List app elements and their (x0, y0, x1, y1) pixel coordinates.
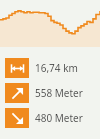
button[interactable]: Descent (5, 108, 29, 128)
button[interactable]: Distance (5, 58, 29, 78)
button[interactable]: Ascent (5, 83, 29, 103)
staticText: 558 Meter (35, 86, 83, 100)
button[interactable]: Descent (0, 108, 100, 128)
button[interactable]: Distance (0, 58, 100, 78)
staticText: 480 Meter (35, 111, 83, 125)
staticText: 16,74 km (35, 61, 78, 75)
button[interactable]: Ascent (0, 83, 100, 103)
